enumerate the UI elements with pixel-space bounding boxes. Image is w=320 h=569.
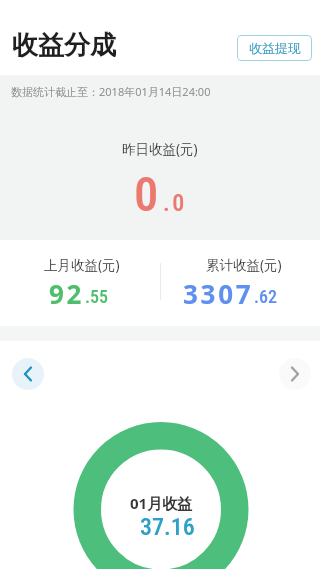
- staticText: 数据统计截止至：2018年01月14日24:00: [11, 84, 211, 99]
- staticText: 上月收益(元): [44, 256, 120, 274]
- staticText: 92: [49, 276, 85, 311]
- staticText: 昨日收益(元): [122, 140, 198, 158]
- button[interactable]: [279, 358, 311, 390]
- staticText: 0: [134, 166, 163, 223]
- staticText: 收益提现: [249, 40, 301, 56]
- staticText: .0: [163, 189, 187, 217]
- staticText: 3307: [183, 276, 254, 311]
- staticText: .62: [254, 286, 278, 307]
- staticText: 37.16: [140, 513, 195, 541]
- staticText: 收益分成: [12, 29, 116, 62]
- staticText: .55: [85, 286, 109, 307]
- staticText: 累计收益(元): [206, 256, 282, 274]
- staticText: 01月收益: [130, 493, 193, 513]
- button[interactable]: 收益提现: [237, 35, 312, 61]
- button[interactable]: [12, 358, 44, 390]
